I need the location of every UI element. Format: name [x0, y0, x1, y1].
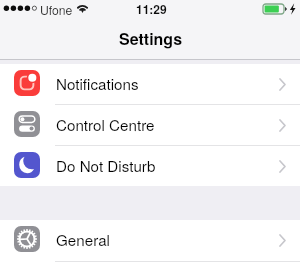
button[interactable]: Do Not Disturb	[0, 146, 300, 186]
staticText: Ufone	[40, 1, 73, 18]
staticText: Notifications	[56, 73, 139, 95]
button[interactable]: Control Centre	[0, 105, 300, 145]
staticText: Control Centre	[56, 114, 155, 136]
button[interactable]: General	[0, 220, 300, 260]
staticText: Do Not Disturb	[56, 155, 156, 177]
staticText: Settings	[119, 27, 183, 50]
staticText: General	[56, 229, 110, 251]
staticText: 11:29	[136, 0, 167, 17]
button[interactable]: Notifications	[0, 64, 300, 104]
